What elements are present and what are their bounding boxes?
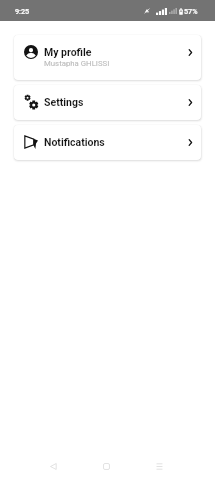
other: Open	[185, 47, 196, 58]
staticText: 57%	[184, 7, 198, 15]
button[interactable]: Notifications	[14, 125, 201, 160]
staticText: Mustapha GHLISSI	[44, 59, 110, 68]
button[interactable]: Back	[40, 453, 66, 480]
staticText: 9:25	[15, 7, 30, 15]
other: Open	[185, 97, 196, 108]
staticText: My profile	[44, 46, 92, 58]
button[interactable]: Home	[93, 453, 119, 480]
button[interactable]: Settings	[14, 85, 201, 120]
staticText: Settings	[44, 96, 84, 108]
other: Open	[185, 137, 196, 148]
button[interactable]: Recent apps	[146, 453, 172, 480]
button[interactable]: My profile	[14, 35, 201, 80]
staticText: Notifications	[44, 136, 105, 148]
